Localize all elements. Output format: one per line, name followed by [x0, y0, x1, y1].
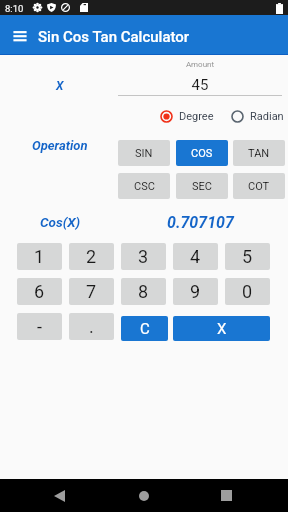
staticText: 9 [190, 281, 201, 302]
staticText: COS [191, 147, 213, 160]
staticText: 3 [138, 246, 149, 267]
staticText: 2 [86, 246, 97, 267]
button[interactable]: . [69, 313, 114, 340]
staticText: TAN [248, 147, 270, 160]
staticText: 45 [118, 76, 282, 94]
button[interactable]: 7 [69, 278, 114, 305]
staticText: 7 [86, 281, 97, 302]
staticText: Amount [118, 60, 282, 69]
staticText: Cos(X) [40, 214, 81, 230]
button[interactable]: SIN [118, 140, 170, 166]
button[interactable]: - [17, 313, 62, 340]
staticText: 8:10 [5, 3, 24, 14]
button[interactable]: Radian [231, 110, 284, 123]
button[interactable]: 1 [17, 243, 62, 270]
button[interactable]: Open navigation menu [10, 26, 30, 46]
staticText: COT [248, 180, 270, 193]
button[interactable]: 5 [225, 243, 270, 270]
button[interactable]: 2 [69, 243, 114, 270]
button[interactable]: TAN [233, 140, 285, 166]
staticText: C [140, 320, 150, 338]
button[interactable]: 8 [121, 278, 166, 305]
staticText: X [217, 320, 227, 338]
button[interactable]: 6 [17, 278, 62, 305]
staticText: 0.707107 [167, 213, 234, 232]
button[interactable]: Home [139, 491, 149, 501]
button[interactable]: 4 [173, 243, 218, 270]
staticText: . [89, 316, 94, 337]
staticText: X [56, 79, 64, 93]
button[interactable]: 9 [173, 278, 218, 305]
staticText: 8 [138, 281, 149, 302]
button[interactable]: X [173, 316, 270, 341]
staticText: 6 [34, 281, 45, 302]
staticText: 0 [242, 281, 253, 302]
button[interactable]: COT [233, 173, 285, 199]
staticText: SIN [135, 147, 153, 160]
button[interactable]: C [121, 316, 168, 341]
staticText: Radian [250, 110, 284, 123]
staticText: 4 [190, 246, 201, 267]
button[interactable]: SEC [176, 173, 228, 199]
button[interactable]: CSC [118, 173, 170, 199]
staticText: 5 [242, 246, 253, 267]
button[interactable]: Degree [160, 110, 214, 123]
staticText: Operation [32, 138, 88, 153]
staticText: CSC [134, 180, 155, 193]
button[interactable]: Back [54, 490, 65, 502]
staticText: 1 [34, 246, 45, 267]
button[interactable]: 3 [121, 243, 166, 270]
staticText: Degree [179, 110, 214, 123]
button[interactable]: 0 [225, 278, 270, 305]
button[interactable]: COS [176, 140, 228, 166]
staticText: Sin Cos Tan Calculator [38, 28, 190, 46]
staticText: - [37, 316, 42, 337]
staticText: SEC [192, 180, 212, 193]
